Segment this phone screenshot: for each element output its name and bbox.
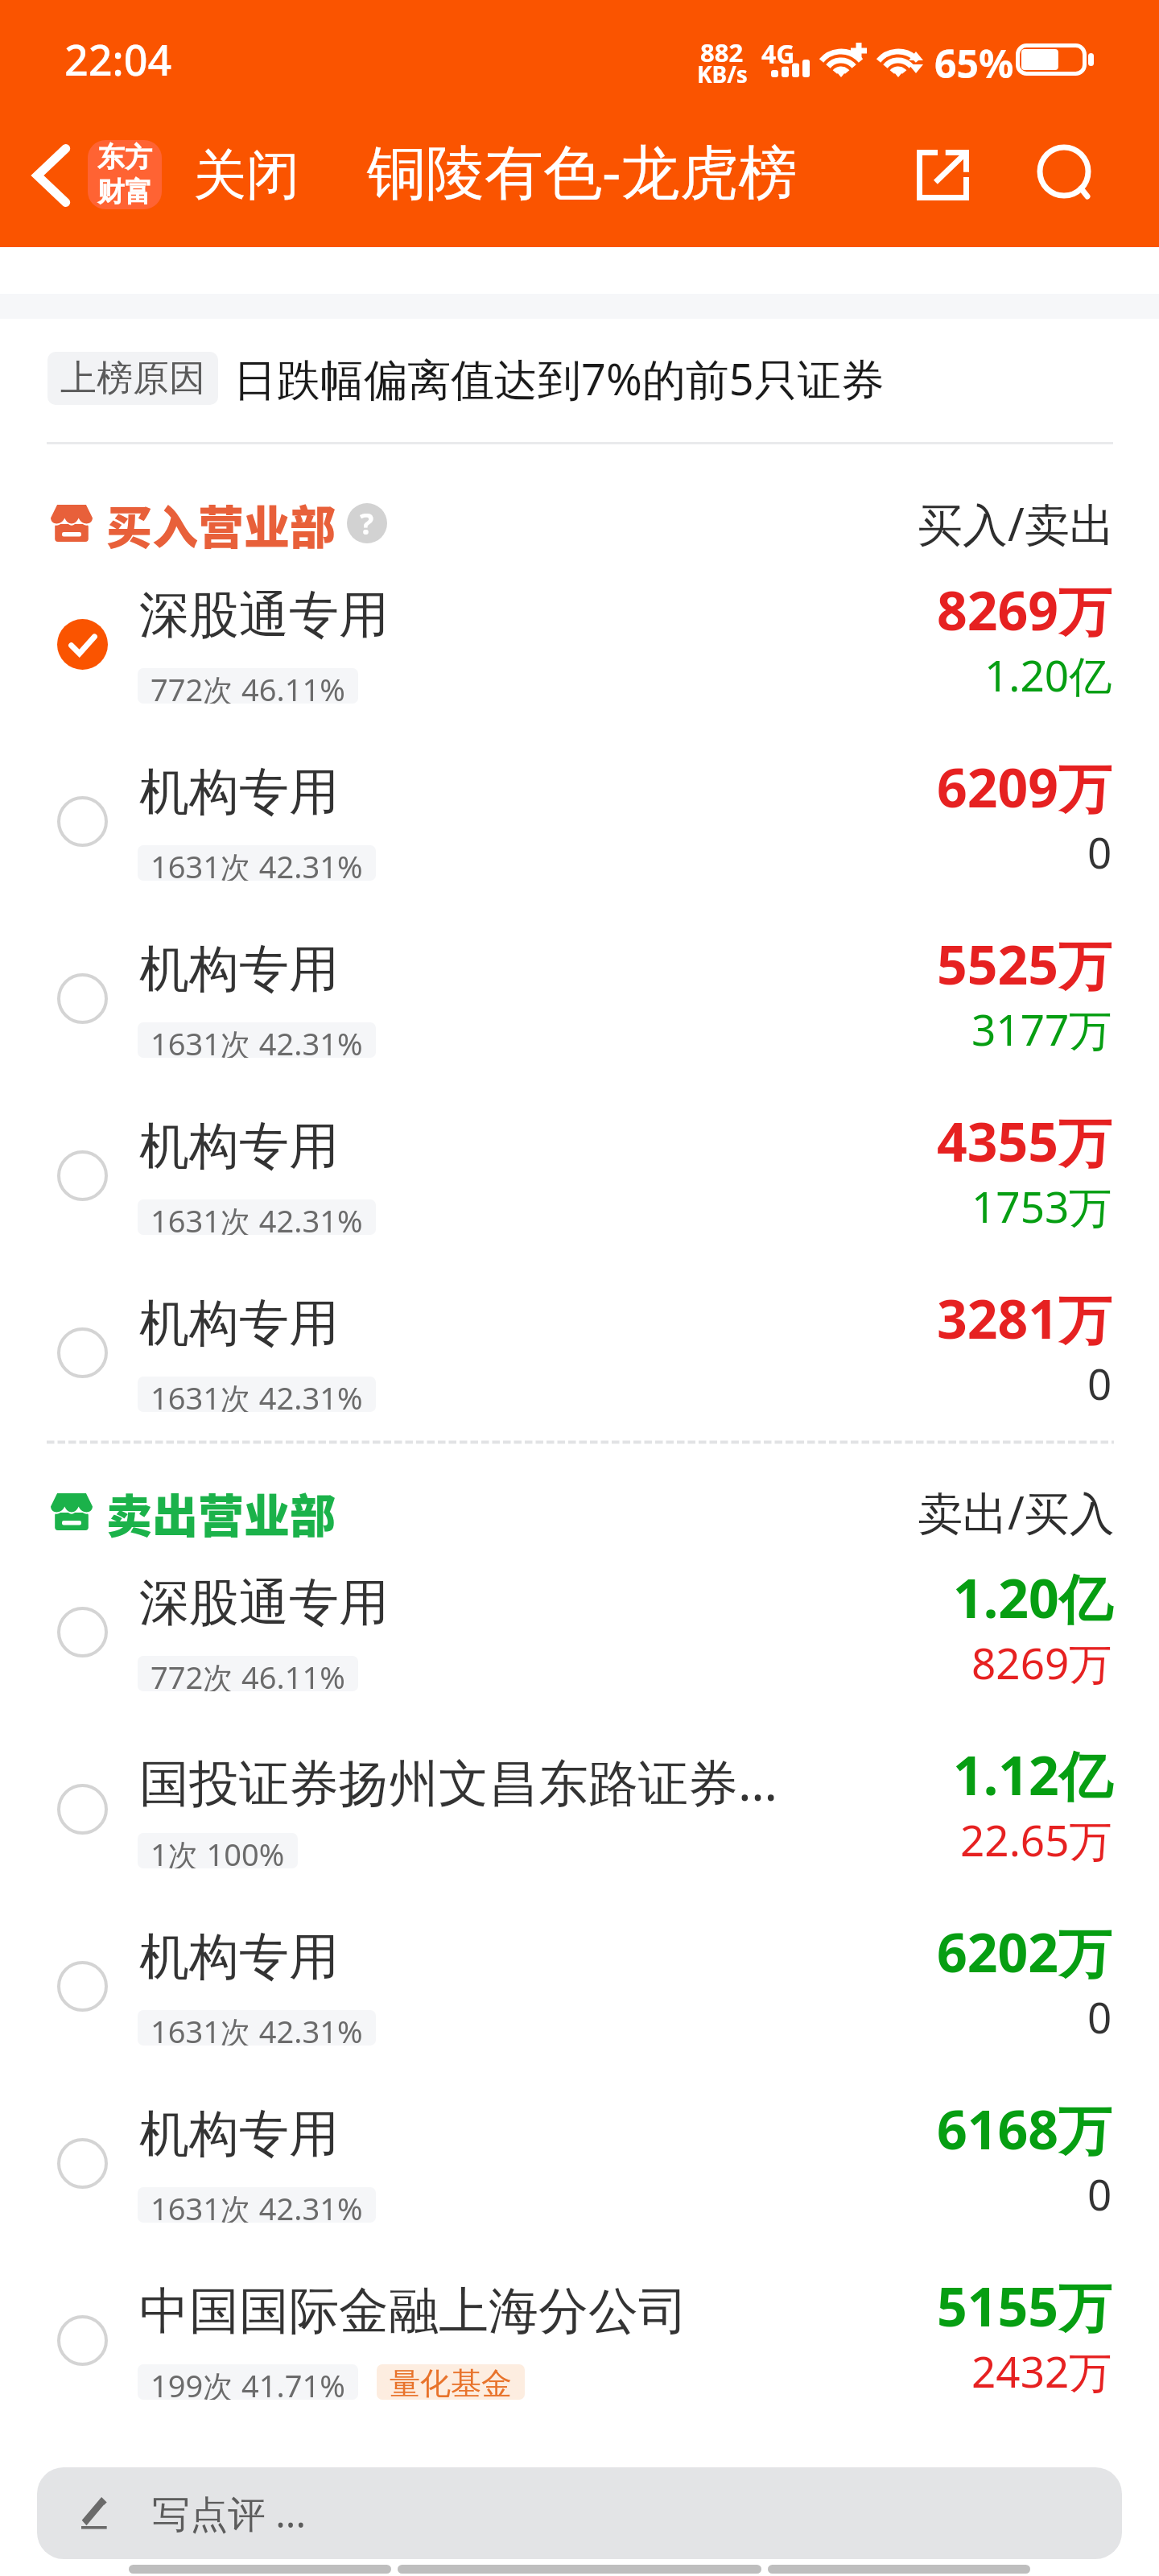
staticText: 东方 xyxy=(97,140,152,175)
button[interactable]: 写点评 ... xyxy=(37,2467,1122,2559)
staticText: 财富 xyxy=(97,175,152,209)
button[interactable]: 机构专用 xyxy=(0,1088,1159,1265)
staticText: 6209万 xyxy=(937,750,1112,823)
staticText: 1631次 42.31% xyxy=(151,1199,363,1235)
staticText: 1753万 xyxy=(971,1177,1112,1235)
staticText: 1631次 42.31% xyxy=(151,2010,363,2046)
staticText: 1.20亿 xyxy=(953,1561,1112,1633)
staticText: 铜陵有色-龙虎榜 xyxy=(367,130,798,211)
staticText: 4G xyxy=(761,36,795,72)
staticText: 2432万 xyxy=(971,2342,1112,2400)
staticText: 199次 41.71% xyxy=(151,2364,345,2400)
staticText: 3177万 xyxy=(971,1000,1112,1058)
staticText: 3281万 xyxy=(937,1282,1112,1354)
button[interactable]: 机构专用 xyxy=(0,2075,1159,2252)
staticText: 5525万 xyxy=(937,927,1112,1000)
staticText: 买入/卖出 xyxy=(918,493,1115,554)
staticText: 4355万 xyxy=(937,1104,1112,1177)
button[interactable]: Home xyxy=(398,2565,761,2574)
staticText: 6202万 xyxy=(937,1915,1112,1988)
button[interactable]: 机构专用 xyxy=(0,910,1159,1088)
button[interactable]: Share xyxy=(904,136,981,213)
staticText: 772次 46.11% xyxy=(151,668,345,704)
staticText: 机构专用 xyxy=(139,2103,339,2165)
button[interactable]: 国投证券扬州文昌东路证券… xyxy=(0,1721,1159,1898)
staticText: 0 xyxy=(1087,1988,1112,2046)
button[interactable]: Back xyxy=(129,2565,391,2574)
staticText: 机构专用 xyxy=(139,1115,339,1178)
staticText: 深股通专用 xyxy=(139,1571,389,1634)
staticText: 机构专用 xyxy=(139,1292,339,1355)
staticText: 卖出/买入 xyxy=(918,1481,1115,1542)
staticText: KB/s xyxy=(697,59,748,89)
staticText: 1631次 42.31% xyxy=(151,845,363,881)
staticText: 5155万 xyxy=(937,2269,1112,2342)
staticText: 关闭 xyxy=(193,142,299,208)
staticText: 写点评 ... xyxy=(152,2487,307,2539)
button[interactable]: 关闭 xyxy=(188,131,305,218)
staticText: ? xyxy=(360,504,374,543)
button[interactable]: Back xyxy=(14,139,87,212)
staticText: 中国国际金融上海分公司 xyxy=(139,2280,688,2343)
staticText: 国投证券扬州文昌东路证券… xyxy=(139,1748,778,1812)
staticText: 8269万 xyxy=(937,573,1112,646)
staticText: 22.65万 xyxy=(960,1810,1112,1868)
button[interactable]: 深股通专用 xyxy=(0,556,1159,733)
staticText: 卖出营业部 xyxy=(106,1480,336,1544)
staticText: 机构专用 xyxy=(139,1926,339,1988)
staticText: 1631次 42.31% xyxy=(151,1022,363,1058)
staticText: 1.12亿 xyxy=(953,1738,1112,1810)
staticText: 882 xyxy=(700,35,744,69)
staticText: 22:04 xyxy=(64,31,172,88)
staticText: 65% xyxy=(934,37,1014,89)
staticText: 买入营业部 xyxy=(106,491,336,555)
staticText: 772次 46.11% xyxy=(151,1656,345,1691)
staticText: 0 xyxy=(1087,1354,1112,1412)
staticText: 量化基金 xyxy=(390,2364,512,2400)
button[interactable]: Search xyxy=(1025,134,1103,211)
button[interactable]: Help xyxy=(347,503,387,543)
button[interactable]: 机构专用 xyxy=(0,1898,1159,2075)
staticText: 1631次 42.31% xyxy=(151,2187,363,2223)
staticText: 1次 100% xyxy=(151,1833,285,1868)
staticText: 8269万 xyxy=(971,1633,1112,1691)
staticText: 日跌幅偏离值达到7%的前5只证券 xyxy=(233,349,885,408)
staticText: 机构专用 xyxy=(139,761,339,824)
button[interactable]: 机构专用 xyxy=(0,1265,1159,1442)
staticText: 上榜原因 xyxy=(60,356,205,402)
button[interactable]: 深股通专用 xyxy=(0,1544,1159,1721)
staticText: 机构专用 xyxy=(139,938,339,1001)
staticText: 1.20亿 xyxy=(984,646,1112,704)
button[interactable]: Recent apps xyxy=(768,2565,1030,2574)
button[interactable]: 中国国际金融上海分公司 xyxy=(0,2252,1159,2429)
staticText: 0 xyxy=(1087,823,1112,881)
staticText: 0 xyxy=(1087,2165,1112,2223)
staticText: 1631次 42.31% xyxy=(151,1377,363,1412)
staticText: 6168万 xyxy=(937,2092,1112,2165)
button[interactable]: 机构专用 xyxy=(0,733,1159,910)
staticText: 深股通专用 xyxy=(139,584,389,646)
